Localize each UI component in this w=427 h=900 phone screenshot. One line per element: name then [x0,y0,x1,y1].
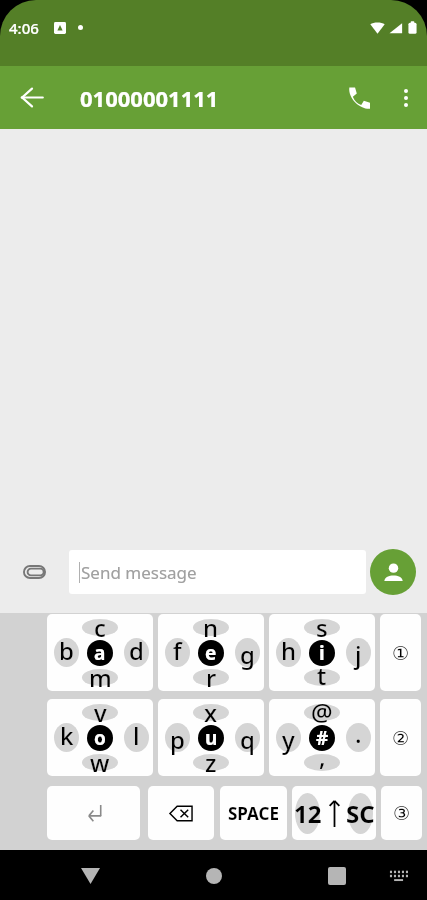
staticText: h [281,634,297,667]
staticText: , [319,740,326,773]
staticText: r [206,661,217,691]
button[interactable]: Home [190,852,237,899]
staticText: y [282,723,295,756]
staticText: f [173,634,182,667]
button[interactable]: Send [370,549,416,595]
staticText: 4:06 [9,18,39,38]
staticText: s [316,614,328,644]
staticText: ③ [393,802,411,824]
staticText: a [94,640,106,666]
staticText: # [316,725,329,751]
staticText: o [94,725,106,751]
staticText: x [204,699,218,729]
staticText: ① [392,642,410,664]
button[interactable]: Space [220,786,287,840]
button[interactable]: page 3 [381,786,422,840]
button[interactable]: More options [385,66,427,129]
staticText: Send message [81,561,197,584]
staticText: ② [392,727,410,749]
button[interactable]: page ① [380,614,421,691]
button[interactable]: i [269,614,375,691]
staticText: z [205,746,217,776]
staticText: SPACE [228,802,279,825]
button[interactable]: Navigate up [0,66,64,129]
staticText: w [90,746,110,776]
button[interactable]: Back [67,852,114,899]
staticText: d [129,634,144,667]
staticText: n [203,614,219,644]
staticText: . [355,717,362,750]
button[interactable]: e [158,614,264,691]
button[interactable]: page ② [380,699,421,776]
staticText: g [240,638,255,671]
staticText: t [317,659,327,691]
button[interactable]: Enter [47,786,140,840]
staticText: l [133,719,140,752]
staticText: i [319,640,325,666]
staticText: c [94,614,106,644]
button[interactable]: Call [333,66,385,129]
button[interactable]: Recent apps [313,852,360,899]
staticText: m [89,661,112,691]
button[interactable]: Switch mode [292,786,376,840]
staticText: k [60,719,74,752]
staticText: SC [346,797,375,830]
button[interactable]: Send message [69,550,366,594]
staticText: q [240,723,255,756]
button[interactable]: Attach file [0,547,69,597]
staticText: p [170,723,185,756]
button[interactable]: Backspace [148,786,214,840]
staticText: v [94,699,107,729]
staticText: @ [311,699,333,728]
button[interactable]: u [158,699,264,776]
staticText: u [205,725,218,751]
staticText: 12 [294,797,322,830]
staticText: 01000001111 [80,83,219,113]
button[interactable]: a [47,614,153,691]
staticText: b [59,634,74,667]
button[interactable]: # [269,699,375,776]
button[interactable]: o [47,699,153,776]
staticText: j [355,638,362,671]
button[interactable]: Change keyboard [375,852,422,899]
staticText: e [205,640,217,666]
